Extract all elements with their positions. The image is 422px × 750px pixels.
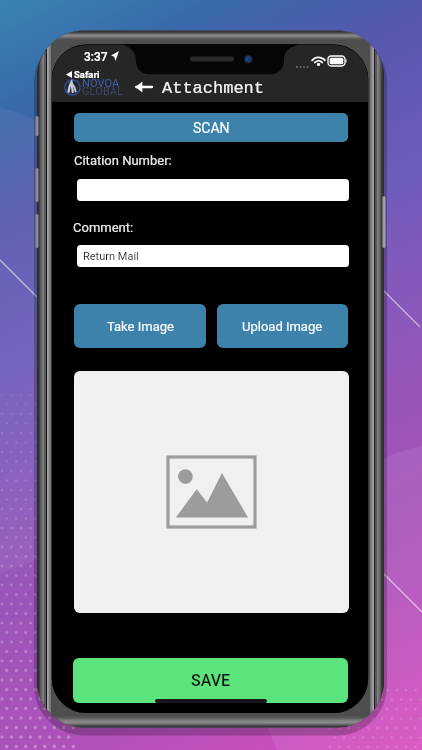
staticText: Upload Image — [242, 319, 323, 334]
staticText: 3:37 — [84, 50, 108, 64]
staticText: SCAN — [193, 120, 230, 136]
staticText: Return Mail — [83, 250, 139, 263]
staticText: Attachment — [162, 79, 265, 98]
button[interactable] — [77, 179, 349, 201]
staticText: SAVE — [191, 671, 231, 690]
button[interactable]: SAVE — [73, 658, 348, 703]
button[interactable]: Take Image — [74, 304, 206, 348]
button[interactable]: Upload Image — [217, 304, 348, 348]
staticText: Citation Number: — [74, 153, 172, 168]
staticText: GLOBAL — [82, 85, 124, 98]
staticText: NOVOA — [82, 77, 120, 90]
staticText: Comment: — [73, 220, 134, 235]
button[interactable]: Return Mail — [77, 245, 349, 267]
button[interactable]: SCAN — [74, 113, 348, 142]
staticText: Safari — [74, 69, 100, 80]
staticText: Take Image — [107, 319, 174, 334]
button[interactable]: Back — [130, 76, 156, 97]
